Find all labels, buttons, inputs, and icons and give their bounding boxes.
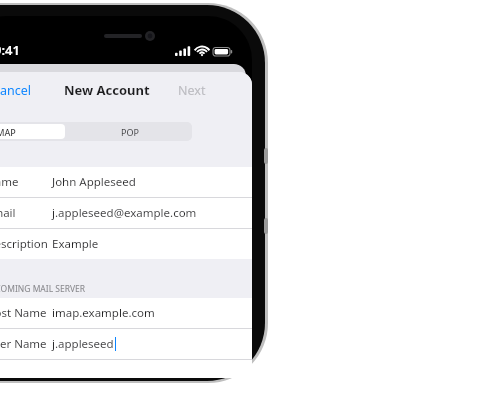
button[interactable]: Cancel — [0, 76, 35, 105]
button[interactable]: Host Name — [0, 298, 252, 328]
button[interactable]: Description — [0, 229, 252, 259]
staticText: Example — [52, 236, 99, 252]
staticText: Email — [0, 205, 16, 221]
button[interactable]: Email — [0, 198, 252, 228]
staticText: 9:41 — [0, 41, 20, 59]
staticText: Next — [178, 82, 206, 99]
button[interactable]: POP — [67, 122, 192, 141]
button[interactable]: User Name — [0, 329, 252, 359]
staticText: j.appleseed@example.com — [52, 205, 197, 221]
staticText: IMAP — [0, 126, 16, 138]
staticText: Name — [0, 174, 19, 190]
staticText: POP — [121, 126, 139, 138]
staticText: Host Name — [0, 305, 47, 321]
staticText: User Name — [0, 336, 47, 352]
button[interactable]: Name — [0, 167, 252, 197]
button[interactable]: Next — [174, 76, 210, 105]
staticText: John Appleseed — [52, 174, 136, 190]
staticText: imap.example.com — [52, 305, 155, 321]
staticText: j.appleseed — [52, 336, 114, 352]
staticText: INCOMING MAIL SERVER — [0, 283, 86, 295]
staticText: New Account — [64, 81, 150, 99]
staticText: Cancel — [0, 82, 31, 99]
button[interactable]: IMAP — [0, 124, 65, 139]
staticText: Description — [0, 236, 48, 252]
